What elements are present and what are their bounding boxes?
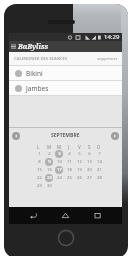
button[interactable]: 24 [55,174,63,182]
button[interactable]: Home button [57,229,75,247]
button[interactable]: Next month [111,132,119,140]
staticText: 15 [37,167,42,173]
staticText: 23 [47,175,52,181]
button[interactable]: 23 [45,174,53,182]
staticText: D [97,144,101,150]
staticText: 17 [57,167,62,173]
button[interactable]: 14 [95,158,103,166]
button[interactable]: 7 [95,150,103,158]
button[interactable]: Menu [9,41,18,52]
button[interactable]: Previous month [12,132,20,140]
staticText: M [57,144,62,150]
staticText: SEPTEMBRE [51,132,80,139]
staticText: 14:29 [104,33,120,41]
staticText: 12 [77,159,82,165]
staticText: 24 [57,175,62,181]
staticText: S [88,144,91,150]
button[interactable]: 18 [65,166,73,174]
button[interactable]: Menu [9,41,122,52]
button[interactable]: 22 [35,174,43,182]
button[interactable]: 11 [65,158,73,166]
button[interactable]: Home [58,208,73,223]
staticText: 7 [98,151,101,157]
button[interactable]: 15 [35,166,43,174]
staticText: supprimer [97,56,118,62]
button[interactable]: 21 [95,166,103,174]
button[interactable]: 8 [35,158,43,166]
staticText: 26 [77,175,82,181]
button[interactable]: 30 [45,182,53,190]
staticText: L [37,144,40,150]
staticText: 22 [37,175,42,181]
staticText: Bikini [26,69,43,78]
button[interactable]: 1 [35,150,43,158]
button[interactable]: Bikini [9,66,122,80]
staticText: 13 [87,159,92,165]
button[interactable]: 28 [95,174,103,182]
staticText: J [68,144,70,150]
button[interactable]: 13 [85,158,93,166]
staticText: 16 [47,167,52,173]
button[interactable]: 19 [75,166,83,174]
button[interactable]: 4 [65,150,73,158]
staticText: V [78,144,81,150]
staticText: CALENDRIER DES SEANCES [14,56,68,62]
button[interactable]: 20 [85,166,93,174]
staticText: 10 [57,159,62,165]
button[interactable]: 17 [55,166,63,174]
staticText: 14 [97,159,102,165]
button[interactable]: 25 [65,174,73,182]
staticText: 8 [38,159,41,165]
staticText: 25 [67,175,72,181]
staticText: 18 [67,167,72,173]
button[interactable]: 12 [75,158,83,166]
staticText: 5 [78,151,81,157]
button[interactable]: Jambes [9,81,122,95]
button[interactable]: Recents [90,208,105,223]
staticText: 19 [77,167,82,173]
button[interactable]: 3 [55,150,63,158]
button[interactable]: 9 [45,158,53,166]
staticText: 28 [97,175,102,181]
staticText: 2 [48,151,51,157]
staticText: 30 [47,183,52,189]
staticText: BaByliss [18,42,49,52]
staticText: 20 [87,167,92,173]
staticText: 9 [48,159,51,165]
button[interactable]: 27 [85,174,93,182]
staticText: 4 [68,151,71,157]
staticText: 1 [38,151,41,157]
button[interactable]: 6 [85,150,93,158]
staticText: 21 [97,167,102,173]
staticText: 6 [88,151,91,157]
staticText: 3 [58,151,61,157]
button[interactable]: 29 [35,182,43,190]
button[interactable]: 10 [55,158,63,166]
button[interactable]: 16 [45,166,53,174]
button[interactable]: 2 [45,150,53,158]
button[interactable]: Back [26,208,41,223]
staticText: Jambes [26,84,49,93]
button[interactable]: 5 [75,150,83,158]
button[interactable]: 26 [75,174,83,182]
staticText: 11 [67,159,72,165]
staticText: 29 [37,183,42,189]
staticText: 27 [87,175,92,181]
staticText: M [47,144,52,150]
